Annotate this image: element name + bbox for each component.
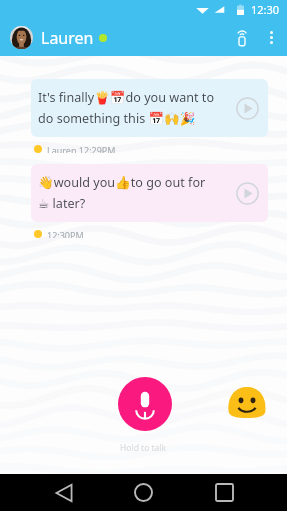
button[interactable]: Contact photo bbox=[10, 26, 33, 49]
button[interactable]: Recents bbox=[206, 474, 243, 511]
button[interactable]: It's finally🍟📅do you want to do somethin… bbox=[31, 79, 268, 137]
button[interactable]: Stickers bbox=[227, 385, 267, 418]
staticText: Hold to talk bbox=[120, 442, 167, 454]
button[interactable]: Play bbox=[236, 97, 259, 120]
button[interactable]: 👋would you👍to go out for ☕ later? bbox=[31, 164, 268, 222]
button[interactable]: Home bbox=[125, 474, 162, 511]
button[interactable]: More options bbox=[257, 19, 286, 56]
staticText: 12:30 bbox=[251, 2, 280, 17]
button[interactable]: Back bbox=[45, 474, 82, 511]
button[interactable]: Cast bbox=[226, 19, 257, 56]
button[interactable]: Play bbox=[236, 182, 259, 205]
staticText: 12:30PM bbox=[47, 229, 84, 238]
staticText: 👋would you👍to go out for ☕ later? bbox=[38, 174, 233, 212]
button[interactable]: Hold to talk bbox=[118, 377, 172, 431]
staticText: Lauren 12:29PM bbox=[47, 144, 116, 153]
staticText: It's finally🍟📅do you want to do somethin… bbox=[38, 89, 233, 127]
staticText: Lauren bbox=[41, 27, 94, 49]
